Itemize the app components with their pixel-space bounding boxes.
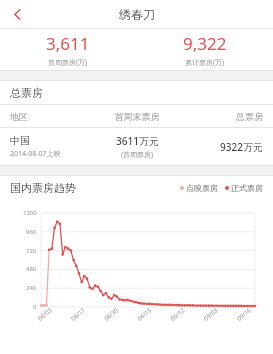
staticText: 首周末票房 [91,111,183,122]
button[interactable]: Back [0,0,34,28]
staticText: 总票房 [10,86,43,100]
staticText: 中国 [10,134,30,147]
staticText: 9322万元 [220,140,263,154]
staticText: 2014-08-07上映 [10,149,61,159]
staticText: 正式票房 [231,183,263,193]
button[interactable]: 3,611 [0,29,136,70]
staticText: (首周票房) [121,150,154,160]
staticText: 总票房 [183,111,263,122]
staticText: 9,322 [183,32,227,55]
staticText: 地区 [10,111,91,122]
staticText: 国内票房趋势 [10,181,76,195]
button[interactable]: 点映票房 [180,183,218,193]
button[interactable]: 9,322 [136,29,273,70]
button[interactable]: 正式票房 [225,183,263,193]
staticText: 绣春刀 [119,7,155,22]
staticText: 3,611 [46,32,90,55]
staticText: 首周票房(万) [48,58,88,68]
staticText: 点映票房 [186,183,218,193]
staticText: 累计票房(万) [185,58,225,68]
button[interactable]: 中国 [0,128,273,165]
staticText: 3611万元 [116,134,159,148]
